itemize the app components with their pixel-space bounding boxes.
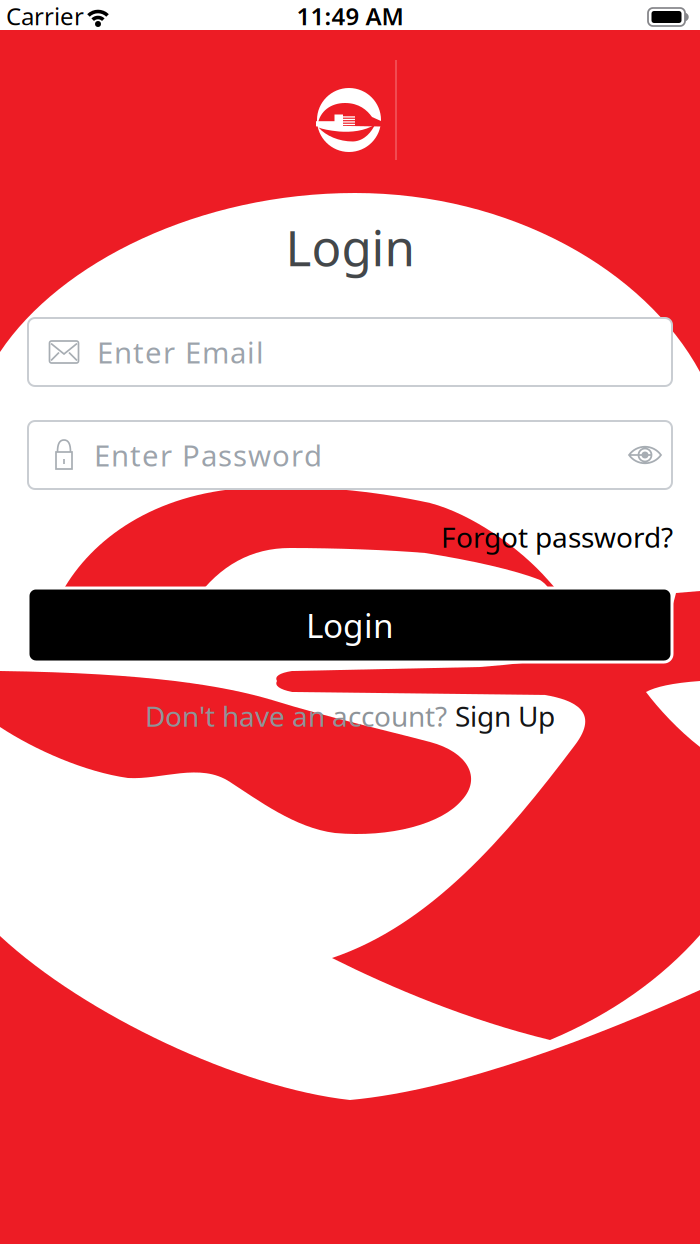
staticText: 11:49 AM: [296, 0, 403, 32]
staticText: Forgot password?: [441, 518, 673, 556]
staticText: Login: [306, 603, 394, 647]
button[interactable]: Login: [28, 588, 672, 662]
staticText: Login: [285, 214, 414, 280]
button[interactable]: Show password: [628, 441, 662, 469]
button[interactable]: Enter Email: [28, 318, 672, 386]
staticText: Sign Up: [455, 697, 555, 735]
button[interactable]: Forgot password?: [441, 518, 673, 556]
staticText: Enter Email: [97, 332, 264, 371]
staticText: Carrier: [6, 0, 84, 32]
staticText: Enter Password: [94, 435, 322, 474]
button[interactable]: Enter Password: [28, 421, 672, 489]
staticText: Don't have an account?: [145, 697, 447, 735]
button[interactable]: Sign Up: [455, 697, 555, 735]
